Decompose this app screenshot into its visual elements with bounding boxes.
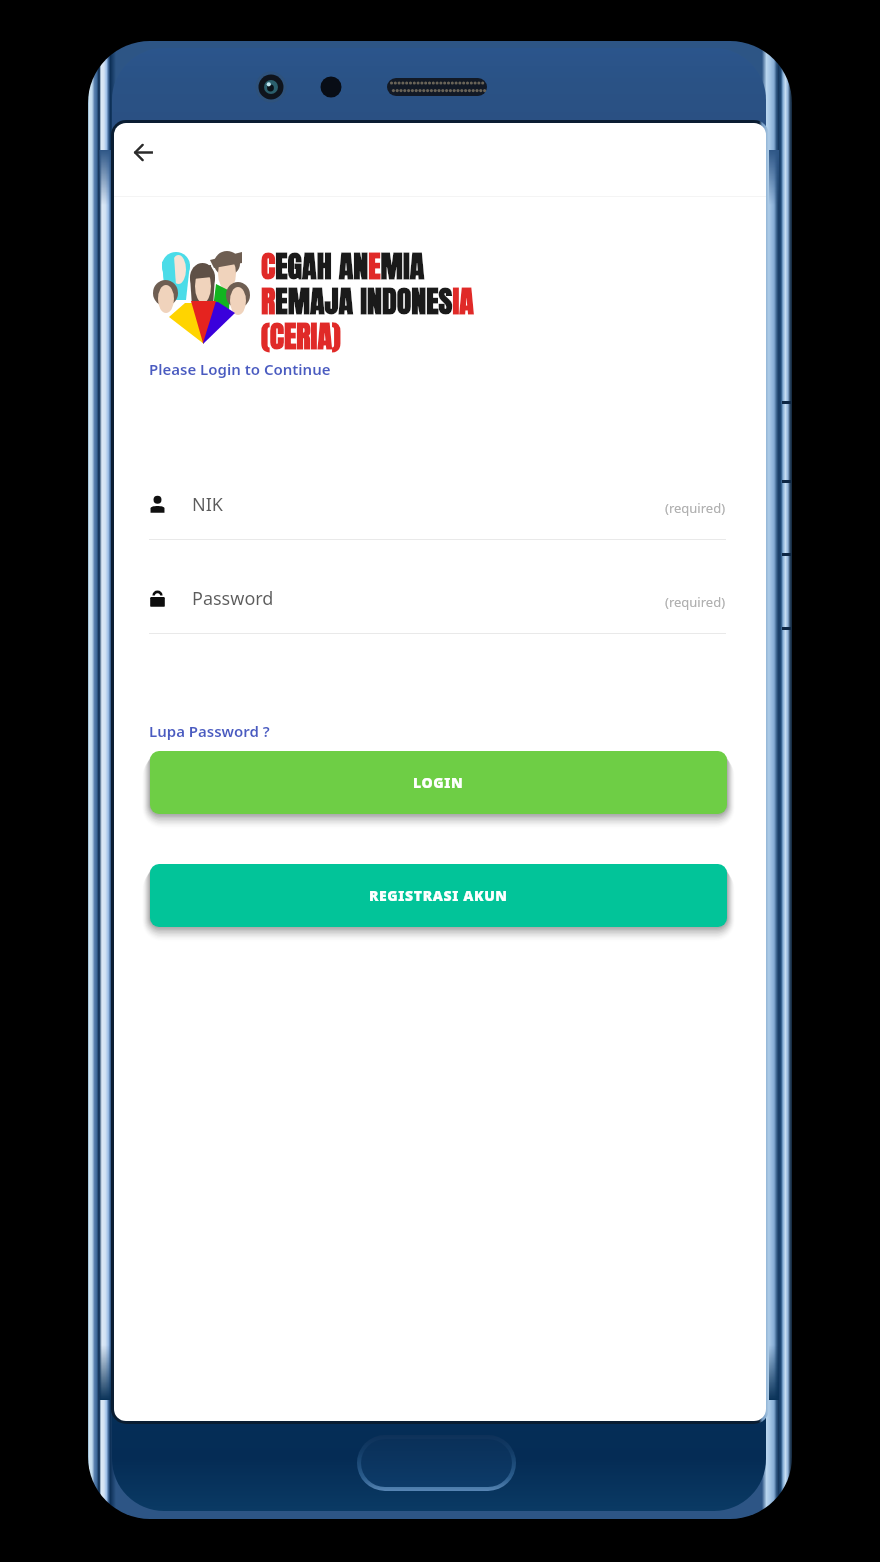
staticText: REGISTRASI AKUN [369, 886, 508, 905]
button[interactable]: NIK [114, 487, 766, 545]
staticText: (required) [665, 593, 726, 611]
staticText: (required) [665, 499, 726, 517]
staticText: REMAJA INDONESIA [261, 279, 474, 324]
staticText: Lupa Password ? [149, 721, 270, 741]
staticText: Please Login to Continue [149, 359, 331, 379]
button[interactable]: Password [114, 581, 766, 639]
button[interactable]: LOGIN [150, 751, 727, 814]
staticText: LOGIN [413, 773, 464, 792]
button[interactable]: Back [121, 130, 165, 174]
staticText: (CERIA) [261, 314, 341, 359]
staticText: NIK [192, 492, 223, 517]
staticText: Password [192, 586, 274, 611]
staticText: CEGAH ANEMIA [261, 244, 425, 289]
button[interactable]: Lupa Password ? [149, 719, 270, 743]
button[interactable]: REGISTRASI AKUN [150, 864, 727, 927]
